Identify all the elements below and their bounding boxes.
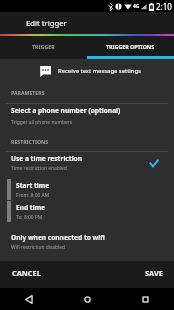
button[interactable]: Recent apps — [116, 288, 174, 310]
staticText: 2:10 — [156, 1, 172, 12]
staticText: Select a phone number (optional) — [11, 106, 121, 115]
button[interactable]: Back — [0, 288, 58, 310]
staticText: To: 8:00 PM — [16, 214, 43, 221]
staticText: Edit trigger — [26, 18, 67, 28]
staticText: RESTRICTIONS — [11, 138, 49, 145]
other: Enabled — [150, 160, 158, 167]
staticText: 4G — [133, 3, 140, 10]
button[interactable]: TRIGGER — [0, 36, 87, 56]
staticText: Receive text message settings — [58, 67, 141, 75]
button[interactable]: End time — [0, 201, 174, 222]
button[interactable]: Select a phone number (optional) — [0, 105, 174, 129]
button[interactable]: Use a time restriction — [0, 152, 174, 174]
staticText: CANCEL — [12, 268, 41, 278]
staticText: PARAMETERS — [11, 89, 45, 96]
staticText: Wifi restriction disabled — [11, 244, 66, 251]
staticText: TRIGGER — [32, 43, 55, 50]
staticText: End time — [16, 203, 46, 212]
button[interactable]: CANCEL — [0, 259, 87, 286]
staticText: Use a time restriction — [11, 154, 83, 163]
button[interactable]: Only when connected to wifi — [0, 232, 174, 256]
button[interactable]: Start time — [0, 179, 174, 200]
button[interactable]: SAVE — [87, 259, 174, 286]
staticText: Start time — [16, 181, 50, 190]
staticText: TRIGGER OPTIONS — [106, 43, 155, 50]
staticText: Trigger all phone numbers — [11, 119, 73, 126]
staticText: Only when connected to wifi — [11, 233, 105, 242]
staticText: From: 8:00 AM — [16, 192, 50, 199]
button[interactable]: TRIGGER OPTIONS — [87, 36, 174, 56]
staticText: Time restriction enabled — [11, 165, 67, 172]
staticText: SAVE — [145, 268, 163, 278]
button[interactable]: Home — [58, 288, 116, 310]
button[interactable]: Receive text message settings — [0, 64, 174, 78]
